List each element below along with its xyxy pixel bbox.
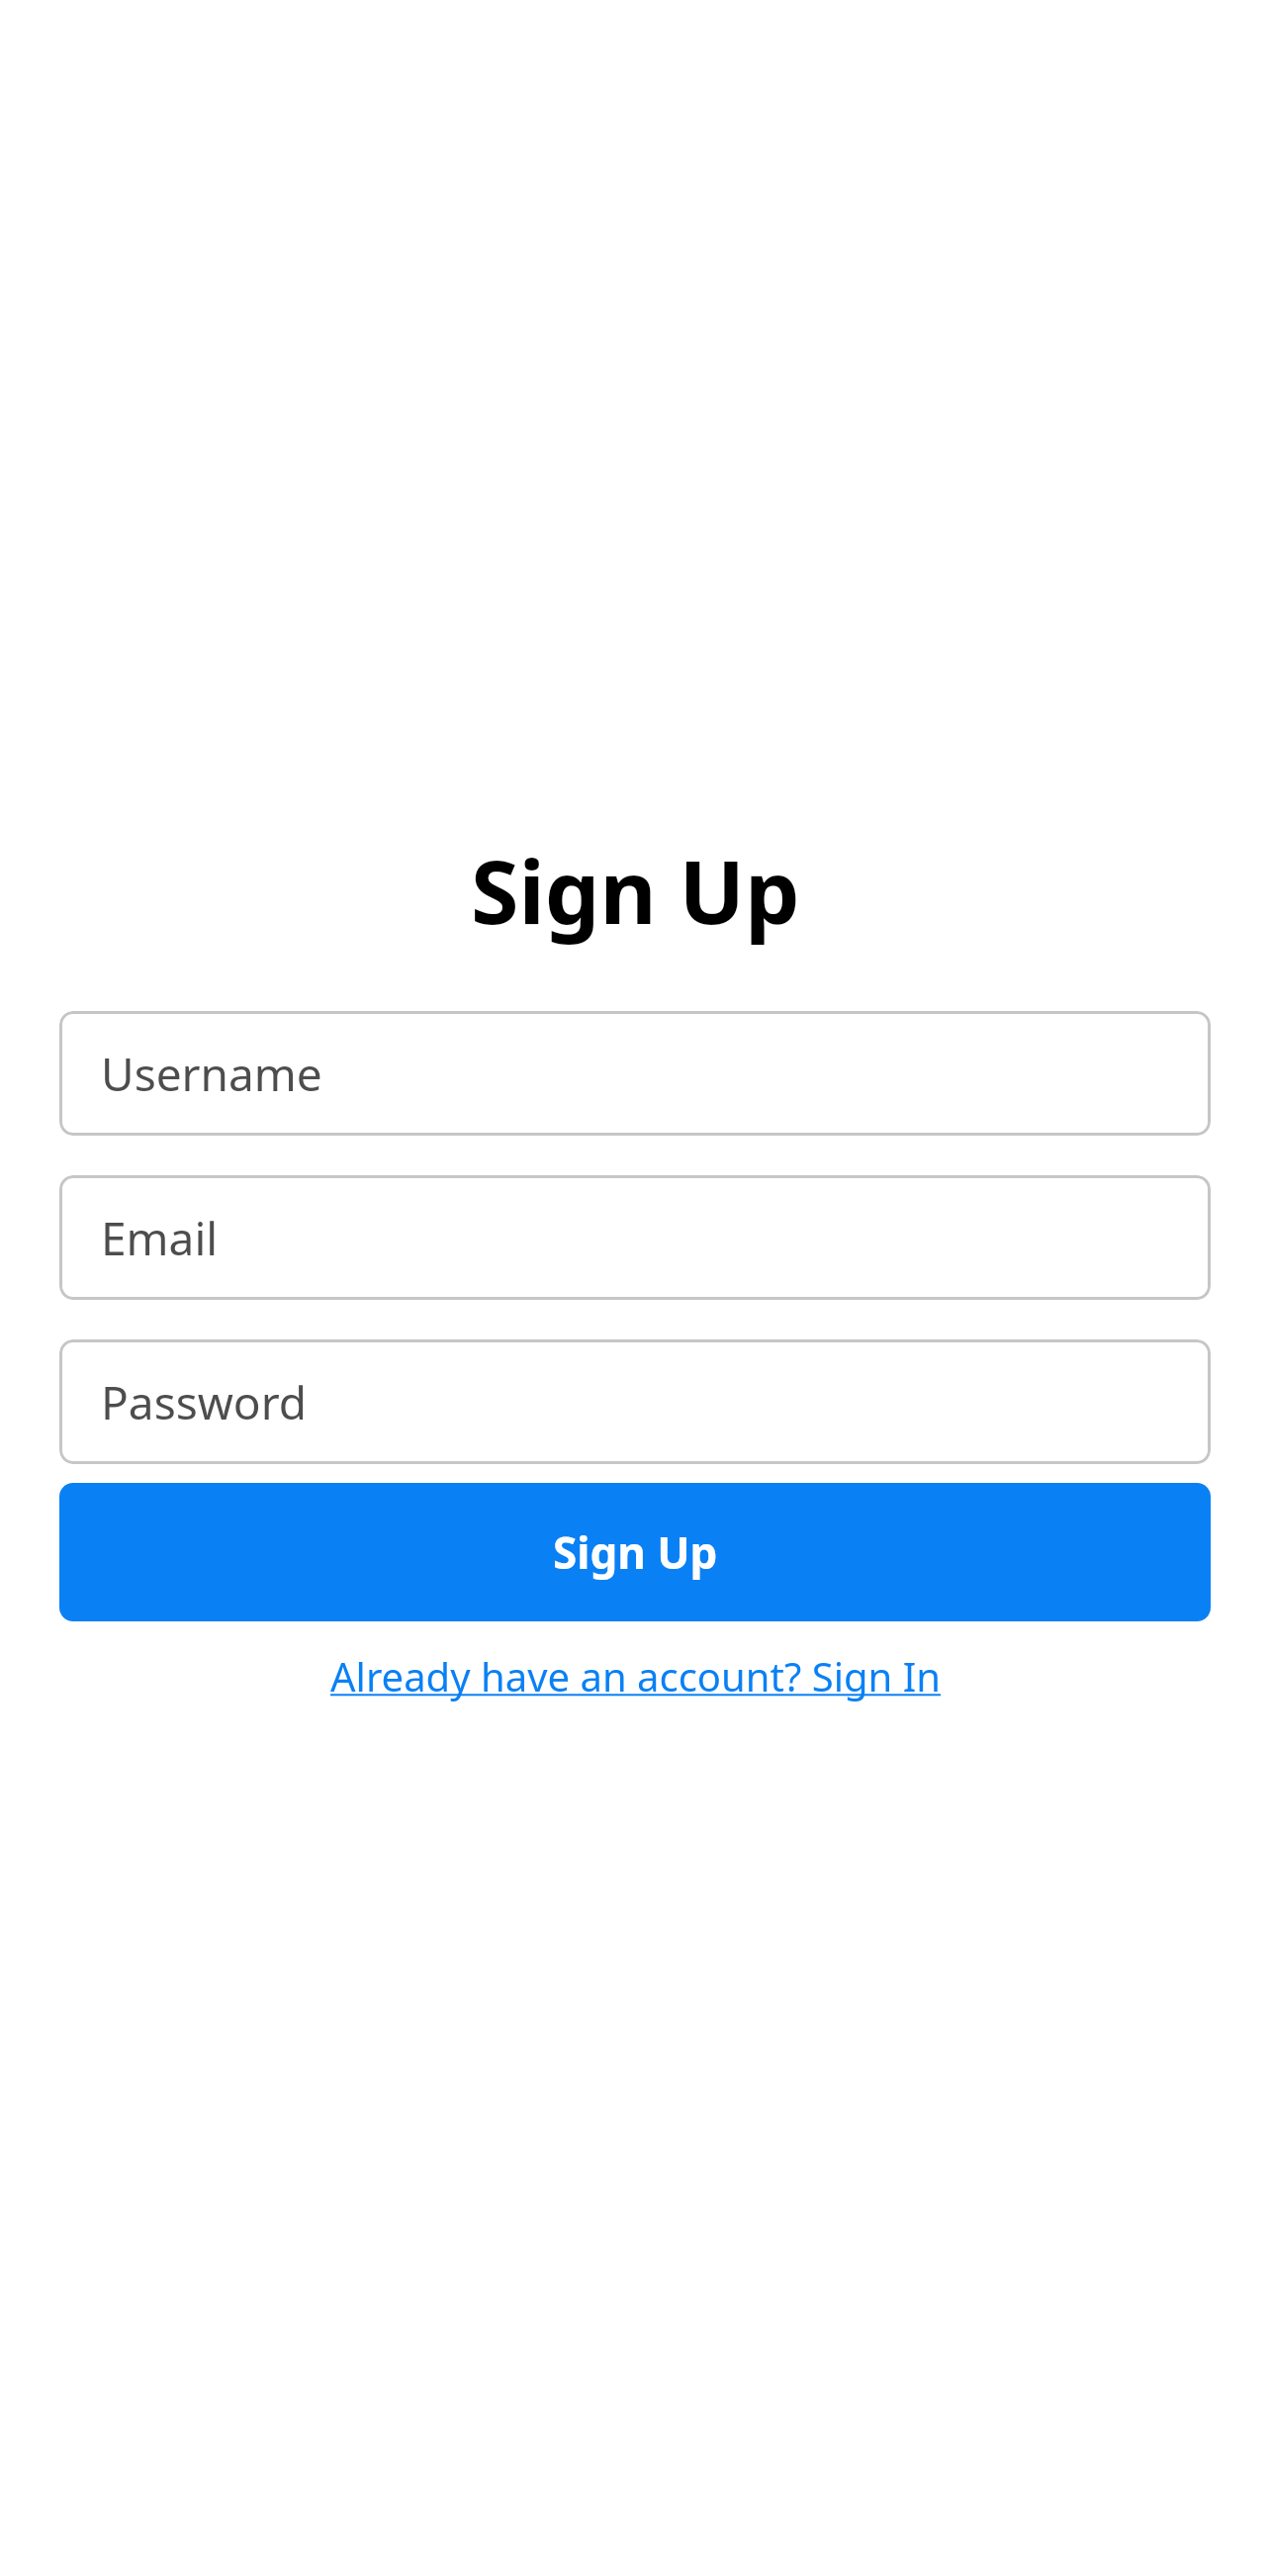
staticText: Sign Up bbox=[553, 1522, 718, 1582]
staticText: Already have an account? Sign In bbox=[330, 1649, 941, 1702]
staticText: Sign Up bbox=[471, 831, 800, 950]
staticText: Username bbox=[101, 1043, 322, 1105]
button[interactable]: Password bbox=[59, 1339, 1211, 1464]
staticText: Password bbox=[101, 1371, 308, 1433]
button[interactable]: Username bbox=[59, 1011, 1211, 1136]
staticText: Email bbox=[101, 1207, 219, 1269]
button[interactable]: Already have an account? Sign In bbox=[59, 1637, 1211, 1714]
button[interactable]: Email bbox=[59, 1175, 1211, 1300]
button[interactable]: Sign Up bbox=[59, 1483, 1211, 1621]
